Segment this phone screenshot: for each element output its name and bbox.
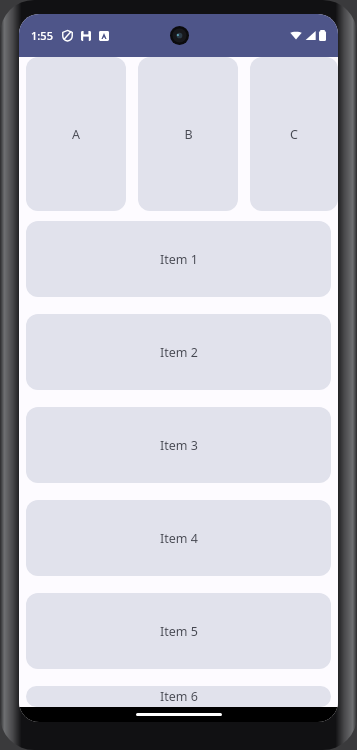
staticText: B: [184, 126, 193, 143]
button[interactable]: Home gesture handle: [136, 713, 222, 716]
button[interactable]: Item 2: [26, 314, 331, 390]
staticText: 1:55: [31, 28, 53, 43]
staticText: C: [290, 126, 298, 143]
staticText: Item 5: [160, 623, 198, 640]
button[interactable]: Item 1: [26, 221, 331, 297]
staticText: A: [72, 126, 80, 143]
button[interactable]: Item 6: [26, 686, 331, 707]
button[interactable]: Item 4: [26, 500, 331, 576]
staticText: Item 4: [160, 530, 198, 547]
staticText: Item 3: [160, 437, 198, 454]
button[interactable]: B: [138, 57, 238, 211]
button[interactable]: Item 5: [26, 593, 331, 669]
button[interactable]: Item 3: [26, 407, 331, 483]
button[interactable]: C: [250, 57, 338, 211]
staticText: Item 6: [160, 688, 198, 705]
staticText: Item 2: [160, 344, 198, 361]
staticText: Item 1: [160, 251, 198, 268]
button[interactable]: A: [26, 57, 126, 211]
